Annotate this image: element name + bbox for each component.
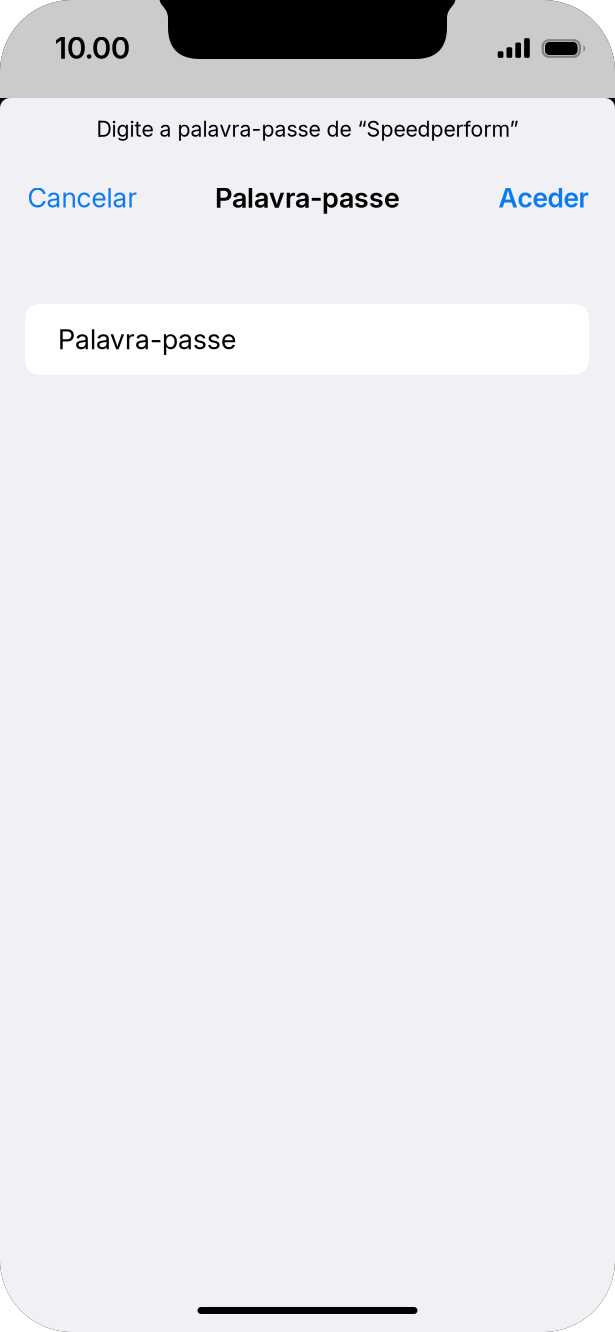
staticText: 10.00 xyxy=(55,30,130,66)
button[interactable]: Aceder xyxy=(498,183,588,213)
staticText: Digite a palavra-passe de “Speedperform” xyxy=(96,116,518,142)
staticText: Palavra-passe xyxy=(215,181,400,214)
button[interactable]: Cancelar xyxy=(27,183,137,213)
staticText: Cancelar xyxy=(27,182,137,214)
staticText: Aceder xyxy=(498,182,588,214)
button[interactable]: Palavra-passe xyxy=(25,304,589,375)
staticText: Palavra-passe xyxy=(58,323,236,356)
